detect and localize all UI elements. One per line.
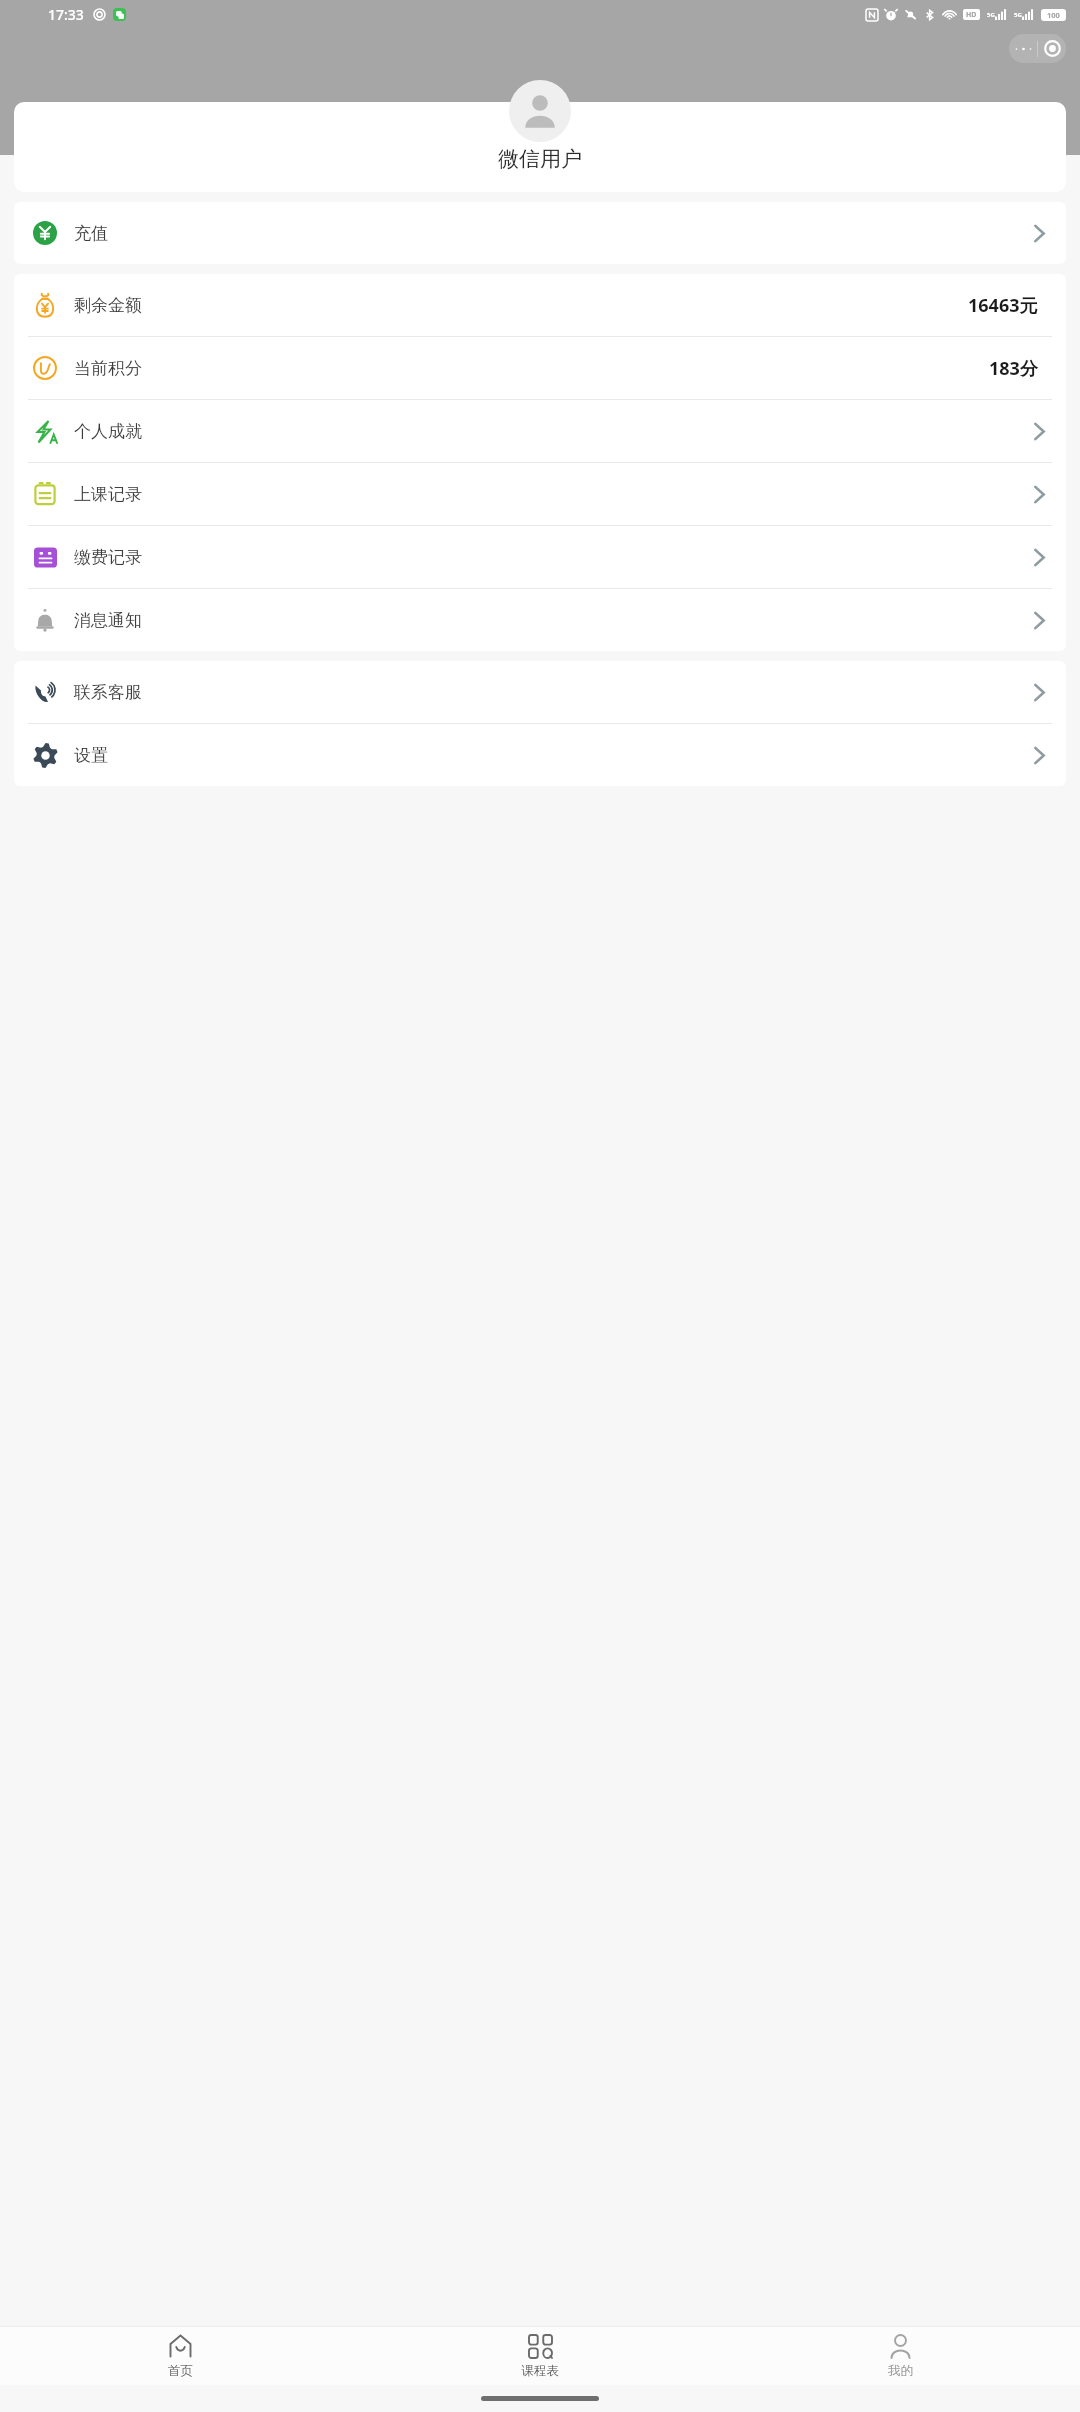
button[interactable]: 首页: [0, 2327, 360, 2385]
button[interactable]: Avatar: [509, 80, 571, 142]
button[interactable]: 当前积分: [14, 337, 1066, 399]
staticText: 16463元: [968, 293, 1038, 318]
button[interactable]: 设置: [14, 724, 1066, 786]
button[interactable]: 我的: [720, 2327, 1080, 2385]
staticText: 剩余金额: [74, 295, 142, 316]
staticText: 17:33: [48, 5, 84, 24]
staticText: 183分: [989, 356, 1038, 381]
staticText: 首页: [168, 2363, 193, 2379]
button[interactable]: 消息通知: [14, 589, 1066, 651]
staticText: 设置: [74, 745, 108, 766]
staticText: 100: [1047, 10, 1060, 20]
button[interactable]: 缴费记录: [14, 526, 1066, 588]
staticText: 我的: [888, 2363, 913, 2379]
staticText: 缴费记录: [74, 547, 142, 568]
staticText: 当前积分: [74, 358, 142, 379]
staticText: 个人成就: [74, 421, 142, 442]
staticText: 消息通知: [74, 610, 142, 631]
button[interactable]: 课程表: [360, 2327, 720, 2385]
button[interactable]: 充值: [14, 202, 1066, 264]
staticText: 充值: [74, 223, 108, 244]
staticText: 联系客服: [74, 682, 142, 703]
button[interactable]: More: [1009, 34, 1037, 63]
button[interactable]: 微信用户: [14, 102, 1066, 192]
staticText: 微信用户: [498, 146, 582, 172]
staticText: 5G: [1014, 11, 1022, 19]
staticText: 课程表: [521, 2363, 559, 2379]
staticText: 5G: [987, 11, 995, 19]
staticText: HD: [966, 10, 977, 20]
button[interactable]: 个人成就: [14, 400, 1066, 462]
button[interactable]: 剩余金额: [14, 274, 1066, 336]
button[interactable]: 联系客服: [14, 661, 1066, 723]
button[interactable]: 上课记录: [14, 463, 1066, 525]
button[interactable]: Close: [1038, 34, 1066, 63]
staticText: 上课记录: [74, 484, 142, 505]
